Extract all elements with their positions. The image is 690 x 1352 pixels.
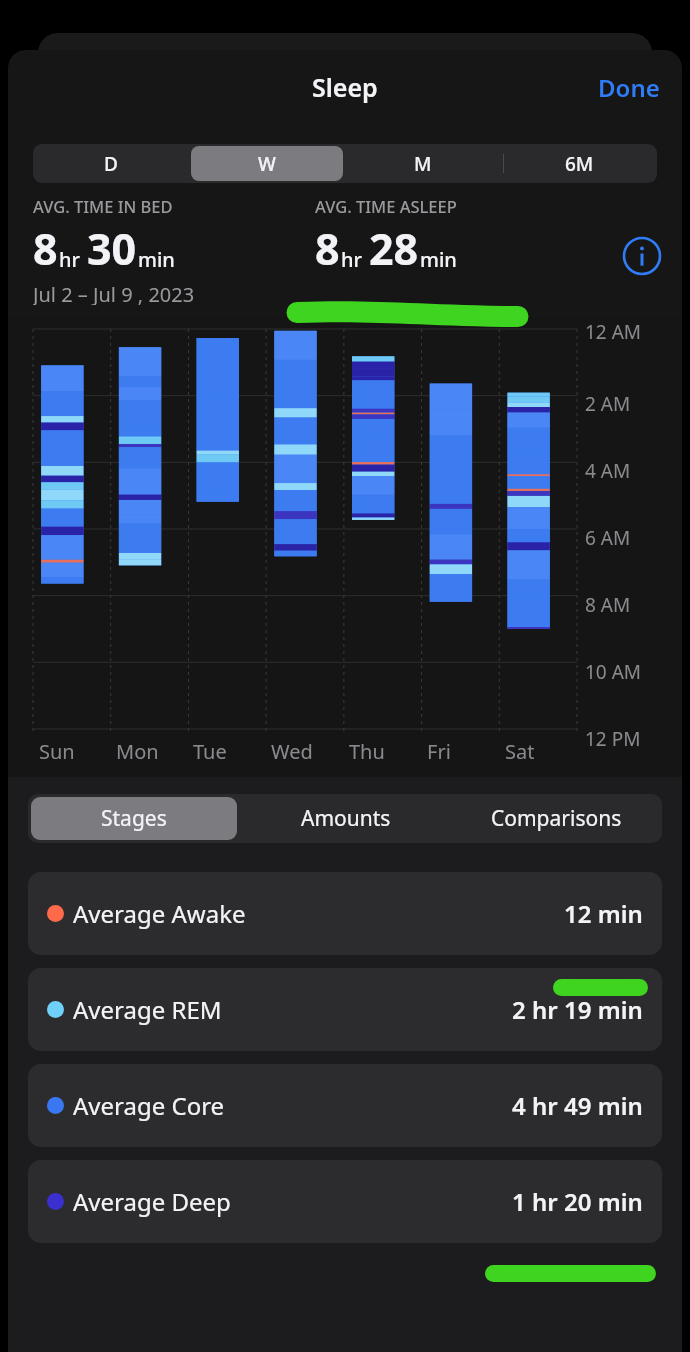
- staticText: Mon: [116, 738, 159, 765]
- staticText: 4 hr 49 min: [512, 1089, 643, 1122]
- staticText: W: [258, 151, 276, 177]
- staticText: 8 AM: [585, 592, 631, 618]
- staticText: 12 AM: [585, 319, 642, 343]
- staticText: Average Core: [73, 1089, 225, 1122]
- staticText: Sleep: [312, 70, 378, 104]
- staticText: 10 AM: [585, 659, 642, 685]
- staticText: hr: [341, 246, 362, 273]
- staticText: Stages: [101, 804, 167, 833]
- button[interactable]: Done: [590, 65, 668, 110]
- staticText: Average Deep: [73, 1185, 231, 1218]
- staticText: Average REM: [73, 993, 222, 1026]
- staticText: 4 AM: [585, 458, 631, 484]
- staticText: Done: [598, 71, 660, 104]
- button[interactable]: Comparisons: [454, 797, 659, 840]
- button[interactable]: Stages: [31, 797, 237, 840]
- staticText: Average Awake: [73, 897, 246, 930]
- staticText: 6M: [565, 151, 594, 177]
- staticText: Jul 2 – Jul 9 , 2023: [33, 281, 195, 305]
- staticText: hr: [59, 246, 80, 273]
- staticText: Sat: [505, 738, 535, 765]
- button[interactable]: D: [35, 146, 187, 181]
- staticText: 8: [33, 219, 58, 278]
- staticText: AVG. TIME IN BED: [33, 195, 173, 217]
- staticText: min: [138, 246, 175, 273]
- staticText: D: [104, 151, 118, 177]
- staticText: AVG. TIME ASLEEP: [315, 195, 457, 217]
- staticText: Thu: [349, 738, 385, 765]
- staticText: 30: [87, 219, 137, 278]
- staticText: Tue: [193, 738, 227, 765]
- staticText: M: [414, 151, 432, 177]
- staticText: Fri: [427, 738, 451, 765]
- button[interactable]: M: [347, 146, 499, 181]
- button[interactable]: Average REM: [28, 968, 662, 1051]
- staticText: 1 hr 20 min: [512, 1185, 643, 1218]
- staticText: 12 PM: [585, 726, 641, 752]
- staticText: Comparisons: [491, 804, 622, 833]
- staticText: 2 hr 19 min: [512, 993, 643, 1026]
- staticText: Sun: [39, 738, 75, 765]
- button[interactable]: Information about sleep data: [620, 234, 664, 278]
- staticText: 2 AM: [585, 391, 631, 417]
- staticText: Amounts: [301, 804, 391, 833]
- button[interactable]: Average Deep: [28, 1160, 662, 1243]
- staticText: min: [420, 246, 457, 273]
- staticText: 6 AM: [585, 525, 631, 551]
- button[interactable]: Average Core: [28, 1064, 662, 1147]
- button[interactable]: Amounts: [243, 797, 448, 840]
- button[interactable]: W: [191, 146, 343, 181]
- staticText: 12 min: [564, 897, 643, 930]
- staticText: Wed: [271, 738, 313, 765]
- staticText: 8: [315, 219, 340, 278]
- button[interactable]: Average Awake: [28, 872, 662, 955]
- staticText: 28: [369, 219, 419, 278]
- button[interactable]: 6M: [503, 146, 655, 181]
